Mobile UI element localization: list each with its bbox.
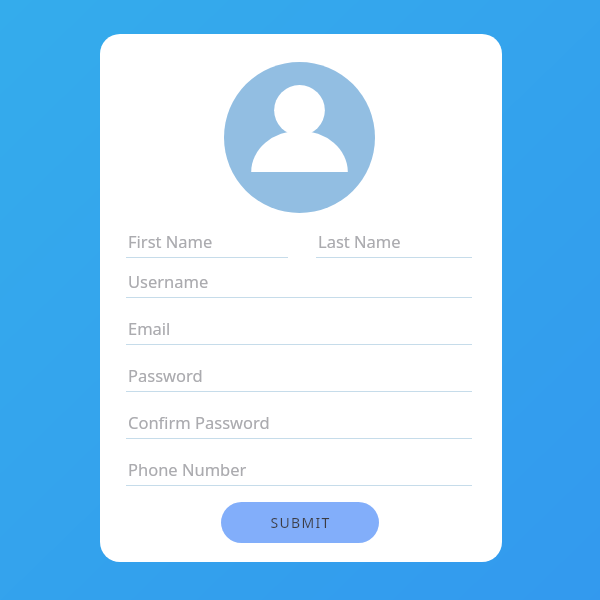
staticText: First Name [128,230,213,252]
button[interactable]: Last Name [316,230,472,258]
button[interactable]: SUBMIT [221,502,379,543]
button[interactable]: Confirm Password [126,411,472,439]
button[interactable]: Profile photo [224,62,375,213]
button[interactable]: Password [126,364,472,392]
staticText: SUBMIT [270,513,331,532]
staticText: Email [128,317,171,339]
button[interactable]: First Name [126,230,288,258]
button[interactable]: Email [126,317,472,345]
staticText: Username [128,270,209,292]
staticText: Last Name [318,230,401,252]
staticText: Confirm Password [128,411,270,433]
staticText: Password [128,364,203,386]
button[interactable]: Username [126,270,472,298]
button[interactable]: Phone Number [126,458,472,486]
staticText: Phone Number [128,458,247,480]
